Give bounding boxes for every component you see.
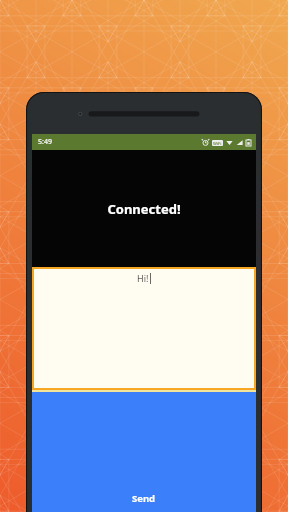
button[interactable]: Send [32,392,256,512]
button[interactable]: Hi! [32,267,256,390]
staticText: WiFi [213,141,222,146]
staticText: Connected! [107,200,181,218]
staticText: Send [132,492,156,505]
staticText: Hi! [137,272,149,284]
staticText: 5:49 [38,137,52,147]
